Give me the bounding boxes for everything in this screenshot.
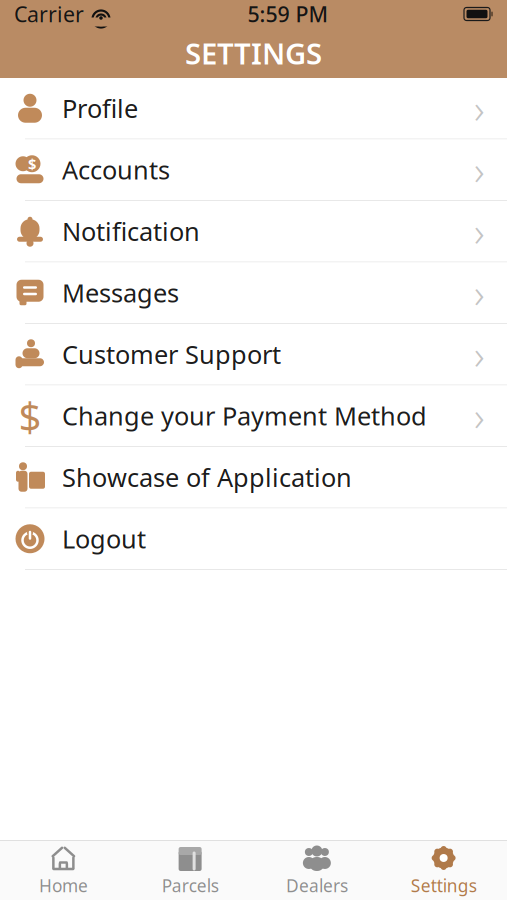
staticText: Settings: [411, 874, 477, 897]
staticText: Accounts: [62, 153, 170, 186]
staticText: ›: [474, 82, 485, 135]
staticText: Home: [39, 874, 88, 897]
staticText: Carrier: [14, 0, 84, 28]
button[interactable]: Customer Support: [0, 324, 507, 385]
staticText: ›: [474, 205, 485, 258]
button[interactable]: Notification: [0, 201, 507, 262]
staticText: Showcase of Application: [62, 460, 352, 494]
staticText: ›: [474, 389, 485, 442]
button[interactable]: Profile: [0, 78, 507, 139]
staticText: Change your Payment Method: [62, 399, 427, 432]
staticText: ›: [474, 328, 485, 381]
button[interactable]: $: [0, 139, 507, 201]
button[interactable]: Dealers: [253, 841, 380, 899]
staticText: Parcels: [162, 874, 219, 897]
staticText: Logout: [62, 522, 146, 555]
staticText: $: [18, 389, 41, 442]
staticText: Profile: [62, 91, 138, 125]
staticText: Customer Support: [62, 337, 281, 371]
staticText: ›: [474, 266, 485, 319]
button[interactable]: Parcels: [127, 841, 254, 899]
staticText: 5:59 PM: [247, 0, 328, 28]
button[interactable]: Messages: [0, 262, 507, 324]
staticText: $: [28, 154, 36, 173]
staticText: Messages: [62, 276, 179, 309]
staticText: Notification: [62, 214, 200, 248]
button[interactable]: $: [0, 385, 507, 447]
staticText: ›: [474, 143, 485, 196]
button[interactable]: Settings: [380, 841, 507, 899]
staticText: SETTINGS: [185, 33, 322, 72]
staticText: Dealers: [286, 874, 348, 897]
button[interactable]: Logout: [0, 508, 507, 570]
button[interactable]: Home: [0, 841, 127, 899]
button[interactable]: Showcase of Application: [0, 447, 507, 508]
